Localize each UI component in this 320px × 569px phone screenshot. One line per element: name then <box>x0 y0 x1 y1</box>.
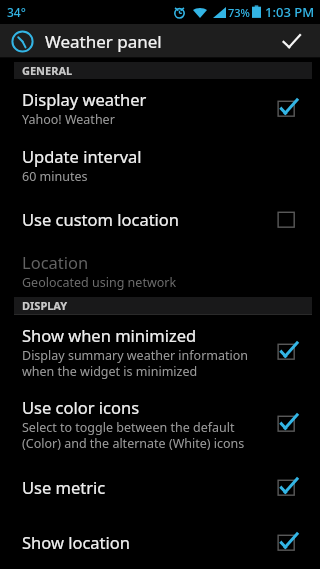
staticText: Display summary weather information when… <box>22 347 249 379</box>
button[interactable]: Show location <box>0 514 320 569</box>
button[interactable]: Use color icons <box>0 387 320 459</box>
staticText: 1:03 PM <box>265 3 315 21</box>
button[interactable]: Checked <box>274 529 300 555</box>
staticText: GENERAL <box>22 63 73 78</box>
staticText: Yahoo! Weather <box>22 111 115 128</box>
staticText: Show location <box>22 531 130 553</box>
button[interactable]: Done <box>274 24 308 58</box>
staticText: Use custom location <box>22 208 180 230</box>
staticText: 34° <box>7 4 26 20</box>
staticText: Location <box>22 251 89 273</box>
button[interactable]: Checked <box>274 410 300 436</box>
button[interactable]: Checked <box>274 95 300 121</box>
button[interactable]: Use custom location <box>0 193 320 244</box>
staticText: Geolocated using network <box>22 274 177 291</box>
button[interactable]: Location <box>0 244 320 297</box>
staticText: Show when minimized <box>22 324 197 346</box>
button[interactable]: Update interval <box>0 136 320 193</box>
staticText: Use metric <box>22 476 106 498</box>
staticText: Select to toggle between the default (Co… <box>22 419 245 451</box>
button[interactable]: Use metric <box>0 459 320 514</box>
button[interactable]: Show when minimized <box>0 315 320 387</box>
staticText: 73% <box>228 5 250 20</box>
staticText: 60 minutes <box>22 168 88 185</box>
button[interactable]: Display weather <box>0 79 320 136</box>
staticText: Weather panel <box>45 30 162 53</box>
staticText: Use color icons <box>22 396 140 418</box>
staticText: DISPLAY <box>22 298 68 313</box>
button[interactable]: Unchecked <box>274 206 300 232</box>
button[interactable]: Checked <box>274 338 300 364</box>
button[interactable]: Checked <box>274 474 300 500</box>
staticText: Update interval <box>22 145 142 167</box>
staticText: Display weather <box>22 88 147 110</box>
